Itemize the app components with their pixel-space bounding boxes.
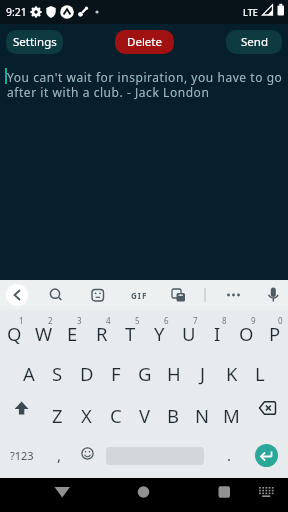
button[interactable]: Q	[0, 310, 29, 352]
button[interactable]	[144, 478, 216, 512]
staticText: X	[81, 403, 92, 428]
staticText: Q	[7, 321, 22, 346]
button[interactable]: O	[232, 310, 261, 352]
button[interactable]: J	[188, 352, 217, 394]
button[interactable]: X	[72, 394, 101, 436]
staticText: 6	[164, 315, 169, 326]
staticText: 3	[77, 315, 82, 326]
staticText: G	[138, 361, 152, 386]
button[interactable]: W	[29, 310, 58, 352]
staticText: W	[35, 321, 53, 346]
staticText: 1	[19, 315, 24, 326]
staticText: K	[226, 361, 238, 386]
button[interactable]	[216, 478, 288, 512]
staticText: E	[67, 321, 78, 346]
button[interactable]	[165, 280, 206, 310]
staticText: T	[125, 321, 136, 346]
button[interactable]: F	[101, 352, 130, 394]
staticText: O	[239, 321, 254, 346]
button[interactable]	[247, 280, 288, 310]
staticText: B	[167, 403, 180, 428]
button[interactable]: Delete	[115, 30, 174, 54]
staticText: Settings	[13, 34, 57, 50]
button[interactable]: T	[116, 310, 145, 352]
button[interactable]: U	[174, 310, 203, 352]
staticText: J	[200, 361, 206, 386]
button[interactable]: .	[208, 436, 245, 478]
button[interactable]	[0, 394, 43, 436]
button[interactable]: E	[58, 310, 87, 352]
staticText: U	[182, 321, 196, 346]
button[interactable]: P	[261, 310, 288, 352]
staticText: R	[96, 321, 108, 346]
staticText: I	[214, 321, 221, 346]
button[interactable]: N	[188, 394, 217, 436]
button[interactable]: M	[217, 394, 246, 436]
button[interactable]: C	[101, 394, 130, 436]
staticText: 5	[135, 315, 140, 326]
button[interactable]: You can't wait for inspiration, you have…	[7, 69, 283, 101]
staticText: C	[110, 403, 122, 428]
staticText: 0	[278, 315, 283, 326]
button[interactable]	[101, 436, 208, 478]
button[interactable]: V	[130, 394, 159, 436]
staticText: 8	[222, 315, 227, 326]
button[interactable]	[0, 280, 42, 310]
button[interactable]	[72, 436, 101, 478]
button[interactable]	[124, 280, 165, 310]
staticText: S	[52, 361, 63, 386]
staticText: N	[195, 403, 210, 428]
button[interactable]	[72, 478, 144, 512]
button[interactable]	[246, 394, 288, 436]
button[interactable]: S	[43, 352, 72, 394]
staticText: 2	[48, 315, 53, 326]
button[interactable]: H	[159, 352, 188, 394]
button[interactable]: Y	[145, 310, 174, 352]
staticText: ?123	[10, 448, 34, 463]
button[interactable]	[245, 436, 288, 478]
staticText: P	[269, 321, 281, 346]
staticText: H	[167, 361, 181, 386]
staticText: A	[23, 361, 35, 386]
staticText: F	[111, 361, 121, 386]
button[interactable]: L	[246, 352, 274, 394]
button[interactable]: A	[14, 352, 43, 394]
button[interactable]: K	[217, 352, 246, 394]
staticText: M	[223, 403, 240, 428]
button[interactable]: Z	[43, 394, 72, 436]
staticText: D	[80, 361, 94, 386]
staticText: LTE	[243, 6, 258, 18]
button[interactable]	[42, 280, 83, 310]
staticText: .	[227, 445, 232, 465]
button[interactable]	[83, 280, 124, 310]
button[interactable]: ,	[43, 436, 72, 478]
staticText: Y	[154, 321, 165, 346]
button[interactable]: ?123	[0, 436, 43, 478]
staticText: 7	[193, 315, 198, 326]
button[interactable]: I	[203, 310, 232, 352]
button[interactable]	[206, 280, 247, 310]
staticText: 9:21	[6, 5, 27, 19]
button[interactable]: Send	[226, 30, 282, 54]
button[interactable]: B	[159, 394, 188, 436]
staticText: 4	[106, 315, 111, 326]
staticText: Send	[241, 34, 268, 50]
staticText: GIF	[131, 290, 148, 301]
staticText: L	[255, 361, 265, 386]
button[interactable]: R	[87, 310, 116, 352]
button[interactable]: D	[72, 352, 101, 394]
staticText: V	[139, 403, 151, 428]
staticText: ,	[57, 445, 62, 465]
staticText: Delete	[127, 34, 162, 50]
staticText: Z	[52, 403, 63, 428]
button[interactable]: G	[130, 352, 159, 394]
button[interactable]: Settings	[6, 30, 63, 54]
button[interactable]	[0, 478, 72, 512]
staticText: 9	[251, 315, 256, 326]
